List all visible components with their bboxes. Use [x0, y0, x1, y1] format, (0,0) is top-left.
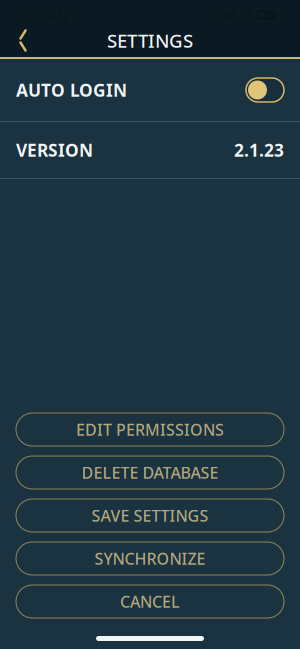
button[interactable]: DELETE DATABASE [16, 456, 284, 489]
staticText: DELETE DATABASE [81, 462, 218, 483]
button[interactable]: Auto Login toggle [246, 78, 284, 102]
button[interactable]: SYNCHRONIZE [16, 542, 284, 575]
button[interactable]: SAVE SETTINGS [16, 499, 284, 532]
staticText: VERSION [16, 138, 93, 161]
staticText: AUTO LOGIN [16, 78, 127, 101]
staticText: SAVE SETTINGS [91, 505, 208, 526]
button[interactable]: AUTO LOGIN [0, 59, 300, 121]
button[interactable]: CANCEL [16, 585, 284, 618]
staticText: SYNCHRONIZE [94, 548, 205, 569]
staticText: 2.1.23 [234, 138, 284, 161]
button[interactable]: Back [6, 25, 40, 55]
staticText: EDIT PERMISSIONS [76, 419, 224, 440]
button[interactable]: EDIT PERMISSIONS [16, 413, 284, 446]
staticText: SETTINGS [107, 28, 193, 53]
staticText: CANCEL [120, 591, 180, 612]
